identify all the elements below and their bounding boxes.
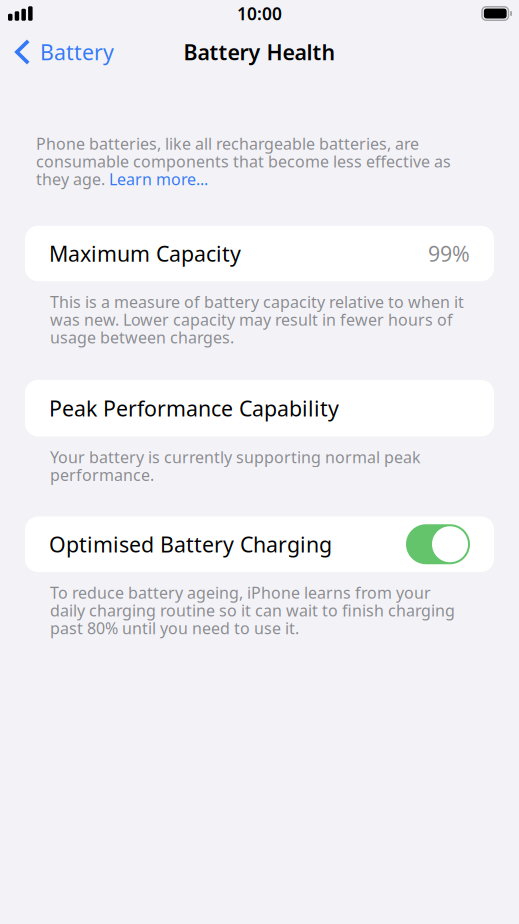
button[interactable]: Optimised Battery Charging, on (406, 524, 470, 564)
staticText: consumable components that become less e… (36, 151, 451, 172)
staticText: Your battery is currently supporting nor… (50, 446, 421, 468)
staticText: performance. (50, 464, 154, 485)
staticText: Learn more... (109, 168, 208, 190)
staticText: 99% (428, 239, 470, 268)
staticText: 10:00 (237, 2, 282, 25)
staticText: Maximum Capacity (49, 239, 241, 268)
button[interactable]: Optimised Battery Charging (0, 516, 519, 572)
staticText: Battery Health (183, 38, 335, 66)
staticText: Phone batteries, like all rechargeable b… (36, 133, 419, 154)
staticText: Optimised Battery Charging (49, 530, 332, 558)
staticText: usage between charges. (50, 327, 234, 348)
staticText: was new. Lower capacity may result in fe… (50, 309, 453, 330)
button[interactable]: Maximum Capacity (0, 226, 519, 281)
staticText: To reduce battery ageing, iPhone learns … (50, 582, 431, 603)
button[interactable]: Learn more... (109, 168, 208, 190)
staticText: Battery (40, 38, 114, 66)
staticText: past 80% until you need to use it. (50, 617, 299, 639)
staticText: they age. (36, 168, 109, 190)
staticText: This is a measure of battery capacity re… (50, 291, 464, 312)
staticText: Peak Performance Capability (49, 394, 339, 422)
button[interactable]: Peak Performance Capability (0, 380, 519, 436)
button[interactable]: Battery (0, 27, 126, 77)
staticText: daily charging routine so it can wait to… (50, 600, 455, 621)
